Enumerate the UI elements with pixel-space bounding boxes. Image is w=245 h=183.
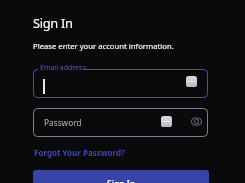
- button[interactable]: [33, 108, 208, 137]
- staticText: Sign In: [33, 14, 73, 31]
- button[interactable]: Forgot Your Password?: [34, 147, 125, 158]
- button[interactable]: [33, 69, 208, 98]
- staticText: Password: [44, 117, 82, 128]
- button[interactable]: Sign In: [33, 170, 209, 183]
- button[interactable]: [186, 76, 197, 87]
- button[interactable]: [161, 116, 172, 127]
- staticText: Please enter your account information.: [33, 41, 174, 51]
- staticText: Sign In: [107, 178, 136, 183]
- button[interactable]: [191, 116, 202, 127]
- staticText: Email address: [40, 63, 86, 73]
